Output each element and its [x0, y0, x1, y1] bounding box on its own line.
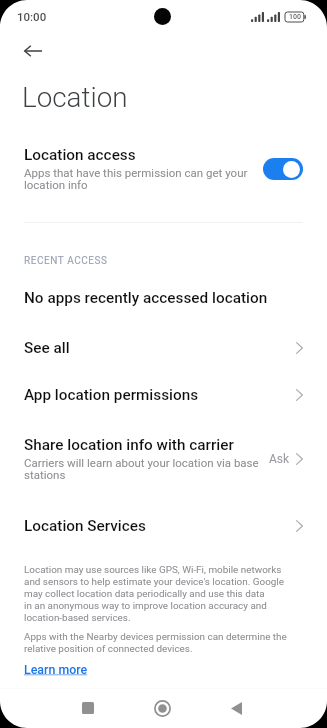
- button[interactable]: Share location info with carrier: [0, 424, 327, 494]
- staticText: Carriers will learn about your location …: [24, 456, 265, 482]
- button[interactable]: Learn more: [24, 662, 88, 677]
- staticText: Location Services: [24, 517, 296, 535]
- button[interactable]: Recent apps: [66, 686, 110, 728]
- staticText: Apps that have this permission can get y…: [24, 166, 259, 192]
- button[interactable]: See all: [0, 329, 327, 367]
- staticText: Location access: [24, 146, 136, 164]
- staticText: App location permissions: [24, 386, 296, 404]
- staticText: See all: [24, 339, 296, 357]
- button[interactable]: Location Services: [0, 507, 327, 545]
- staticText: Ask: [269, 452, 290, 466]
- staticText: No apps recently accessed location: [24, 289, 268, 307]
- staticText: Location: [22, 81, 128, 114]
- staticText: 100: [289, 13, 301, 21]
- button[interactable]: Back: [214, 686, 258, 728]
- staticText: Location may use sources like GPS, Wi-Fi…: [24, 564, 285, 624]
- button[interactable]: Back: [13, 31, 53, 71]
- button[interactable]: App location permissions: [0, 376, 327, 414]
- staticText: RECENT ACCESS: [24, 255, 108, 267]
- button[interactable]: Location access: [0, 146, 327, 192]
- staticText: 10:00: [17, 10, 47, 23]
- staticText: Apps with the Nearby devices permission …: [24, 631, 287, 655]
- button[interactable]: No apps recently accessed location: [0, 279, 327, 317]
- staticText: Share location info with carrier: [24, 436, 234, 454]
- staticText: Learn more: [24, 662, 88, 677]
- button[interactable]: Location access toggle: [263, 158, 303, 180]
- button[interactable]: Home: [140, 686, 184, 728]
